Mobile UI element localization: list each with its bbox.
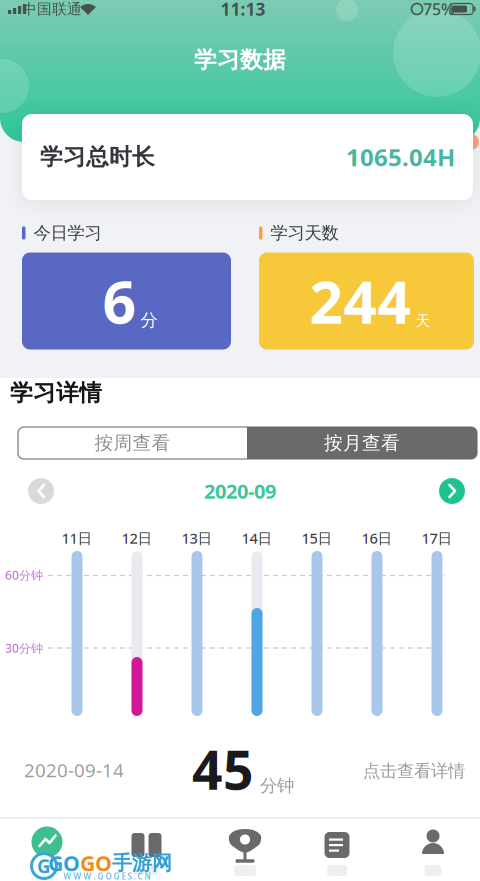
- button[interactable]: Next month: [439, 478, 465, 504]
- staticText: 2020-09-14: [24, 758, 124, 782]
- button[interactable]: 我的: [402, 813, 464, 873]
- staticText: 75%: [423, 0, 455, 20]
- staticText: 手游网: [112, 851, 172, 875]
- button[interactable]: 点击查看详情: [363, 760, 465, 782]
- staticText: 学习总时长: [40, 143, 155, 171]
- button[interactable]: 按月查看: [247, 427, 477, 459]
- button[interactable]: 成就: [214, 813, 276, 873]
- button[interactable]: 学习数据: [3, 812, 91, 872]
- staticText: 6: [102, 262, 136, 340]
- staticText: 15日: [301, 528, 332, 548]
- staticText: 45: [192, 734, 254, 804]
- staticText: GO: [48, 849, 80, 877]
- staticText: 学习数据: [194, 46, 286, 74]
- staticText: 按周查看: [94, 431, 170, 454]
- staticText: 17日: [421, 528, 452, 548]
- button[interactable]: Previous month: [28, 478, 54, 504]
- staticText: 分: [140, 310, 157, 331]
- staticText: 16日: [361, 528, 392, 548]
- staticText: 2020-09: [204, 478, 276, 504]
- staticText: 天: [415, 312, 430, 330]
- staticText: 按月查看: [324, 431, 400, 454]
- staticText: 30分钟: [5, 640, 43, 656]
- staticText: 学习详情: [10, 379, 102, 407]
- button[interactable]: 资讯: [306, 813, 368, 873]
- staticText: 中国联通: [22, 0, 82, 18]
- staticText: 13日: [181, 528, 212, 548]
- staticText: 60分钟: [5, 567, 43, 583]
- staticText: 1065.04H: [346, 141, 455, 173]
- staticText: W W W . G O G E S . C N: [63, 871, 150, 881]
- staticText: 点击查看详情: [363, 760, 465, 782]
- staticText: 14日: [241, 528, 272, 548]
- staticText: 12日: [121, 528, 152, 548]
- button[interactable]: 词书: [102, 813, 190, 873]
- button[interactable]: 按周查看: [18, 427, 247, 459]
- staticText: 11:13: [220, 0, 265, 20]
- staticText: 今日学习: [33, 222, 101, 244]
- staticText: 11日: [61, 528, 92, 548]
- staticText: GO: [80, 849, 112, 877]
- staticText: 244: [309, 262, 411, 340]
- staticText: 学习天数: [270, 222, 338, 244]
- staticText: G: [37, 854, 51, 878]
- staticText: 分钟: [260, 775, 294, 796]
